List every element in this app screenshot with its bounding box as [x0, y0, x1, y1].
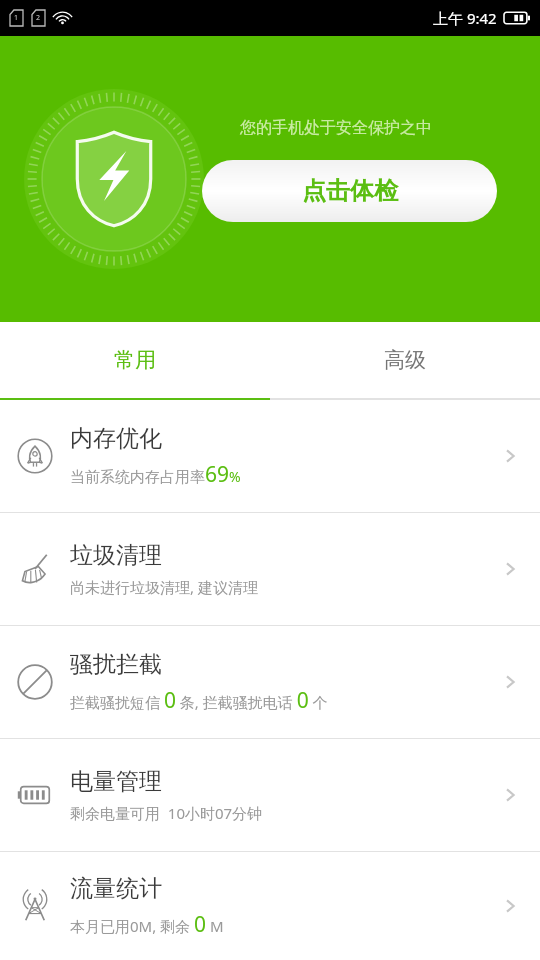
staticText: 本月已用0M, 剩余 0 M	[70, 910, 224, 939]
staticText: 上午 9:42	[433, 8, 497, 28]
button[interactable]: 流量统计	[0, 852, 540, 960]
staticText: 2	[36, 13, 41, 23]
staticText: 垃圾清理	[70, 541, 162, 570]
button[interactable]: 高级	[270, 322, 540, 398]
button[interactable]: 骚扰拦截	[0, 626, 540, 738]
staticText: 您的手机处于安全保护之中	[240, 118, 432, 138]
button[interactable]: 内存优化	[0, 400, 540, 512]
button[interactable]: 常用	[0, 322, 270, 398]
button[interactable]: 点击体检	[202, 160, 497, 222]
staticText: 内存优化	[70, 424, 162, 453]
staticText: 剩余电量可用 10小时07分钟	[70, 803, 263, 823]
staticText: 流量统计	[70, 874, 162, 903]
staticText: 尚未进行垃圾清理, 建议清理	[70, 577, 258, 597]
staticText: 1	[14, 13, 19, 23]
staticText: 电量管理	[70, 767, 162, 796]
button[interactable]: 电量管理	[0, 739, 540, 851]
staticText: 常用	[114, 347, 156, 373]
staticText: 骚扰拦截	[70, 650, 162, 679]
staticText: 高级	[384, 347, 426, 373]
staticText: 当前系统内存占用率69%	[70, 460, 241, 489]
staticText: 点击体检	[302, 176, 398, 206]
button[interactable]: 垃圾清理	[0, 513, 540, 625]
staticText: 拦截骚扰短信 0 条, 拦截骚扰电话 0 个	[70, 686, 328, 715]
